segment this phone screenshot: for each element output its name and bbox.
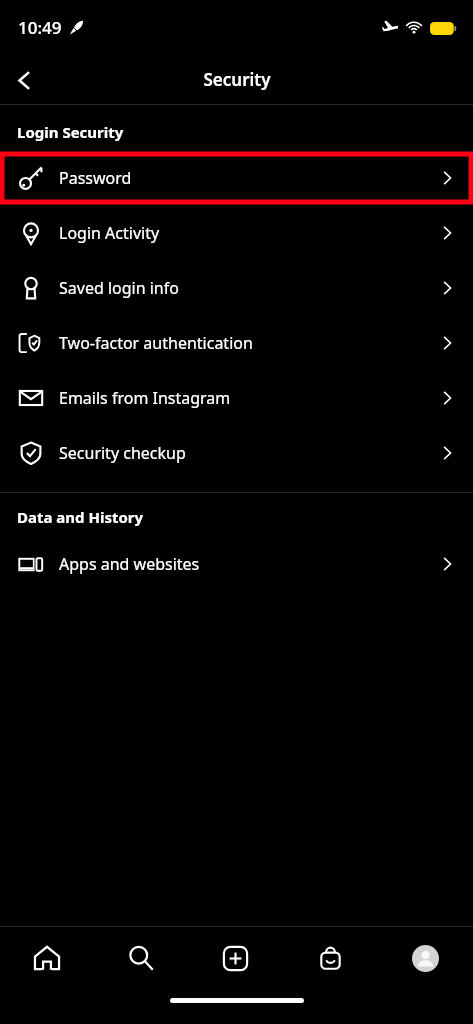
button[interactable]: Security checkup	[0, 425, 473, 480]
staticText: 10:49	[18, 16, 62, 39]
staticText: Apps and websites	[59, 553, 200, 575]
button[interactable]: Back	[0, 56, 48, 104]
staticText: Data and History	[17, 507, 144, 527]
button[interactable]: Home	[0, 927, 94, 989]
staticText: Saved login info	[59, 277, 179, 299]
button[interactable]: Saved login info	[0, 260, 473, 315]
button[interactable]: Shop	[283, 927, 378, 989]
button[interactable]: Emails from Instagram	[0, 370, 473, 425]
staticText: Security	[203, 68, 271, 91]
staticText: Two-factor authentication	[59, 332, 253, 354]
button[interactable]: Login Activity	[0, 205, 473, 260]
button[interactable]: Search	[94, 927, 188, 989]
staticText: Emails from Instagram	[59, 387, 231, 409]
button[interactable]: Two-factor authentication	[0, 315, 473, 370]
button[interactable]: Apps and websites	[0, 536, 473, 591]
staticText: Login Security	[17, 122, 124, 142]
staticText: Security checkup	[59, 442, 186, 464]
staticText: Login Activity	[59, 222, 160, 244]
staticText: Password	[59, 167, 132, 189]
button[interactable]: Profile	[378, 927, 473, 989]
button[interactable]: Password	[2, 154, 471, 202]
button[interactable]: Create	[188, 927, 283, 989]
